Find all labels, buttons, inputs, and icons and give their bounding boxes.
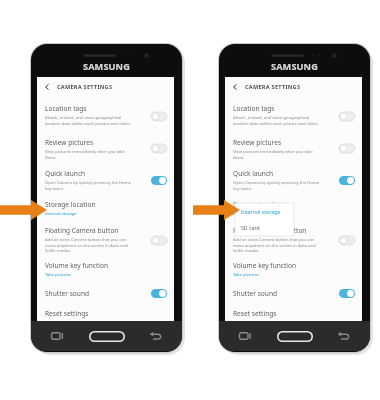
- other: Next step: [0, 200, 47, 220]
- staticText: Attach, embed, and store geographical lo…: [45, 115, 131, 126]
- staticText: Add an extra Camera button that you can …: [233, 237, 316, 253]
- staticText: Internal storage: [233, 211, 265, 217]
- button[interactable]: Location tags: [225, 102, 362, 132]
- button[interactable]: Floating Camera button: [225, 224, 362, 254]
- staticText: Add an extra Camera button that you can …: [45, 237, 128, 253]
- staticText: Open Camera by quickly pressing the Home…: [45, 180, 132, 191]
- staticText: SAMSUNG: [271, 60, 318, 73]
- staticText: Volume key function: [233, 261, 297, 270]
- staticText: Storage location: [45, 200, 96, 209]
- button[interactable]: Internal storage: [235, 203, 294, 219]
- staticText: Open Camera by quickly pressing the Home…: [233, 180, 320, 191]
- staticText: Quick launch: [233, 169, 274, 178]
- button[interactable]: Review pictures: [37, 136, 174, 166]
- button[interactable]: Shutter sound: [37, 284, 174, 304]
- button[interactable]: Location tags: [37, 102, 174, 132]
- button[interactable]: Turn on: [151, 144, 167, 153]
- staticText: Shutter sound: [233, 289, 278, 298]
- button[interactable]: Turn on: [151, 112, 167, 121]
- button[interactable]: Quick launch: [37, 167, 174, 197]
- button[interactable]: Turn on: [151, 236, 167, 245]
- staticText: Take pictures: [45, 272, 71, 278]
- staticText: Reset settings: [45, 309, 89, 318]
- staticText: Review pictures: [233, 138, 282, 147]
- staticText: Attach, embed, and store geographical lo…: [233, 115, 319, 126]
- staticText: Internal storage: [241, 208, 281, 215]
- staticText: Floating Camera button: [45, 226, 119, 235]
- button[interactable]: Volume key function: [225, 259, 362, 289]
- staticText: Take pictures: [233, 272, 259, 278]
- button[interactable]: Turn on: [339, 236, 355, 245]
- button[interactable]: Storage location: [37, 198, 174, 228]
- button[interactable]: Turn on: [339, 144, 355, 153]
- staticText: Location tags: [45, 104, 87, 113]
- button[interactable]: Storage location: [225, 198, 362, 228]
- button[interactable]: Floating Camera button: [37, 224, 174, 254]
- staticText: CAMERA SETTINGS: [57, 83, 113, 91]
- button[interactable]: Back: [37, 77, 174, 97]
- staticText: Internal storage: [45, 211, 77, 217]
- button[interactable]: Shutter sound: [225, 284, 362, 304]
- button[interactable]: Recents: [236, 329, 254, 343]
- staticText: SAMSUNG: [83, 60, 130, 73]
- button[interactable]: Back: [147, 329, 165, 343]
- button[interactable]: Reset settings: [37, 304, 174, 324]
- staticText: Volume key function: [45, 261, 109, 270]
- staticText: View pictures immediately after you take…: [233, 149, 313, 160]
- button[interactable]: Turn off: [339, 289, 355, 298]
- button[interactable]: SD card: [235, 219, 294, 236]
- staticText: Shutter sound: [45, 289, 90, 298]
- staticText: SD card: [241, 224, 260, 231]
- button[interactable]: Home: [277, 331, 313, 342]
- button[interactable]: Turn on: [339, 112, 355, 121]
- staticText: Storage location: [233, 200, 284, 209]
- staticText: CAMERA SETTINGS: [245, 83, 301, 91]
- button[interactable]: Volume key function: [37, 259, 174, 289]
- staticText: Quick launch: [45, 169, 86, 178]
- button[interactable]: Back: [225, 77, 362, 97]
- button[interactable]: Review pictures: [225, 136, 362, 166]
- button[interactable]: Reset settings: [225, 304, 362, 324]
- staticText: Reset settings: [233, 309, 277, 318]
- button[interactable]: Back: [335, 329, 353, 343]
- button[interactable]: Recents: [48, 329, 66, 343]
- other: Back: [232, 84, 238, 90]
- button[interactable]: Turn off: [339, 176, 355, 185]
- other: Back: [44, 84, 50, 90]
- staticText: View pictures immediately after you take…: [45, 149, 125, 160]
- button[interactable]: Turn off: [151, 176, 167, 185]
- staticText: Location tags: [233, 104, 275, 113]
- staticText: Floating Camera button: [233, 226, 307, 235]
- other: Next step: [193, 200, 240, 220]
- staticText: Review pictures: [45, 138, 94, 147]
- button[interactable]: Turn off: [151, 289, 167, 298]
- button[interactable]: Quick launch: [225, 167, 362, 197]
- button[interactable]: Home: [89, 331, 125, 342]
